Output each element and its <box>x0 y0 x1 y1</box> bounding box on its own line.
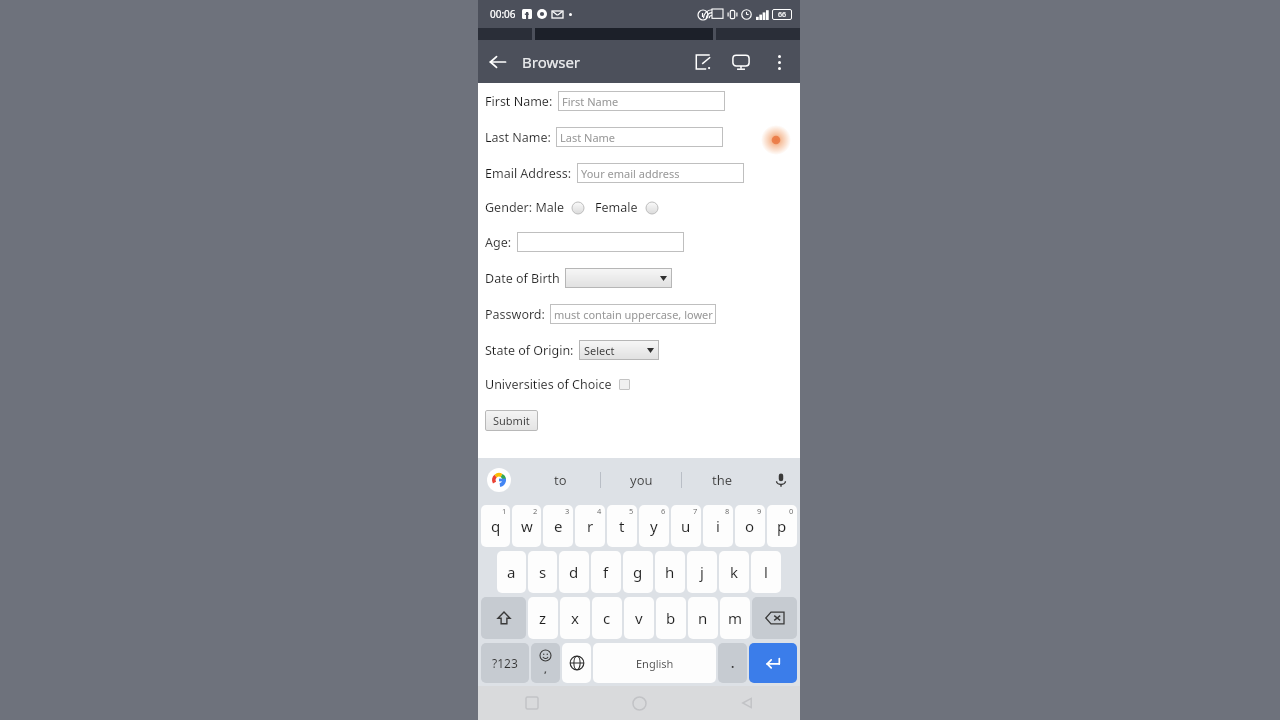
button[interactable]: s <box>528 551 557 593</box>
staticText: 2 <box>533 506 538 516</box>
button[interactable]: Tabs <box>684 43 722 81</box>
staticText: 1 <box>502 506 507 516</box>
staticText: k <box>730 562 739 582</box>
staticText: w <box>521 516 533 536</box>
button[interactable]: c <box>592 597 622 639</box>
staticText: State of Origin: <box>485 342 574 359</box>
staticText: 7 <box>693 506 698 516</box>
staticText: First Name: <box>485 93 553 110</box>
staticText: b <box>666 608 676 628</box>
button[interactable]: English <box>593 643 716 683</box>
staticText: 8 <box>725 506 730 516</box>
button[interactable]: m <box>720 597 750 639</box>
button[interactable]: d <box>559 551 589 593</box>
staticText: 66 <box>778 10 787 20</box>
button[interactable]: f <box>591 551 621 593</box>
button[interactable]: r <box>575 505 605 547</box>
button[interactable]: must contain uppercase, lower <box>550 304 716 324</box>
staticText: English <box>636 656 674 671</box>
button[interactable]: Last Name <box>556 127 723 147</box>
button[interactable]: Backspace <box>752 597 797 639</box>
button[interactable]: the <box>682 458 762 502</box>
button[interactable]: h <box>655 551 685 593</box>
staticText: Submit <box>493 413 530 428</box>
staticText: q <box>491 516 501 536</box>
staticText: Last Name: <box>485 129 551 146</box>
button[interactable]: you <box>601 458 681 502</box>
button[interactable] <box>517 232 684 252</box>
button[interactable]: l <box>751 551 781 593</box>
button[interactable]: Shift <box>481 597 526 639</box>
staticText: h <box>665 562 675 582</box>
button[interactable]: q <box>481 505 510 547</box>
staticText: u <box>681 516 691 536</box>
staticText: 00:06 <box>490 7 516 21</box>
staticText: i <box>716 516 720 536</box>
button[interactable]: u <box>671 505 701 547</box>
button[interactable]: k <box>719 551 749 593</box>
staticText: 9 <box>757 506 762 516</box>
button[interactable]: x <box>560 597 590 639</box>
staticText: l <box>764 562 768 582</box>
staticText: Your email address <box>581 166 680 181</box>
button[interactable]: o <box>735 505 765 547</box>
button[interactable]: Period <box>718 643 747 683</box>
button[interactable]: t <box>607 505 637 547</box>
staticText: g <box>633 562 643 582</box>
button[interactable]: First Name <box>558 91 725 111</box>
staticText: j <box>700 562 704 582</box>
button[interactable]: More options <box>760 43 798 81</box>
staticText: Password: <box>485 306 545 323</box>
button[interactable]: to <box>520 458 600 502</box>
staticText: 5 <box>629 506 634 516</box>
staticText: to <box>554 471 567 489</box>
staticText: First Name <box>562 94 619 109</box>
button[interactable]: y <box>639 505 669 547</box>
button[interactable]: p <box>767 505 797 547</box>
staticText: o <box>745 516 755 536</box>
button[interactable] <box>565 268 672 288</box>
staticText: Date of Birth <box>485 270 560 287</box>
staticText: , <box>544 662 547 676</box>
button[interactable]: Back <box>478 42 518 82</box>
staticText: v <box>635 608 643 628</box>
staticText: must contain uppercase, lower <box>554 307 713 322</box>
button[interactable]: j <box>687 551 717 593</box>
button[interactable]: Your email address <box>577 163 744 183</box>
button[interactable]: e <box>543 505 573 547</box>
button[interactable]: Voice input <box>762 458 800 502</box>
button[interactable]: i <box>703 505 733 547</box>
button[interactable]: v <box>624 597 654 639</box>
button[interactable]: Enter <box>749 643 797 683</box>
button[interactable]: g <box>623 551 653 593</box>
staticText: y <box>650 516 658 536</box>
staticText: a <box>507 562 516 582</box>
button[interactable]: Change language <box>562 643 591 683</box>
button[interactable]: Select <box>579 340 659 360</box>
button[interactable]: Emoji <box>531 643 560 683</box>
staticText: 4 <box>597 506 602 516</box>
button[interactable]: Gender option <box>572 202 584 214</box>
staticText: m <box>728 608 743 628</box>
button[interactable]: Submit <box>485 410 538 431</box>
button[interactable]: Universities of Choice checkbox <box>619 379 630 390</box>
button[interactable]: w <box>512 505 541 547</box>
button[interactable]: Gender option <box>646 202 658 214</box>
button[interactable]: b <box>656 597 686 639</box>
staticText: Browser <box>522 52 581 72</box>
button[interactable]: n <box>688 597 718 639</box>
staticText: the <box>712 471 733 489</box>
staticText: Age: <box>485 234 512 251</box>
button[interactable]: Google <box>478 458 520 502</box>
button[interactable]: Desktop site <box>722 43 760 81</box>
button[interactable]: a <box>497 551 526 593</box>
button[interactable]: ?123 <box>481 643 529 683</box>
staticText: p <box>777 516 787 536</box>
staticText: c <box>603 608 611 628</box>
staticText: f <box>603 562 609 582</box>
staticText: Email Address: <box>485 165 572 182</box>
button[interactable]: z <box>528 597 558 639</box>
